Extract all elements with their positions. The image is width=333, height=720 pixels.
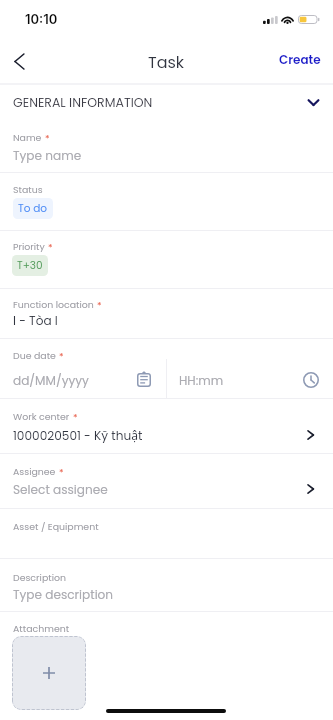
staticText: * (73, 411, 78, 424)
button[interactable]: Create (272, 46, 328, 73)
staticText: HH:mm (179, 372, 224, 389)
other: Pick time (303, 372, 319, 388)
button[interactable]: Back (2, 43, 33, 79)
staticText: Type name (13, 147, 82, 164)
button[interactable] (167, 359, 333, 398)
staticText: * (59, 350, 64, 363)
button[interactable] (0, 454, 333, 508)
button[interactable] (0, 399, 333, 453)
other: Pick date (137, 371, 151, 388)
staticText: Asset / Equipment (13, 520, 99, 533)
staticText: Function location (13, 298, 94, 311)
staticText: * (48, 241, 53, 254)
staticText: Task (148, 51, 185, 73)
button[interactable] (0, 289, 333, 338)
staticText: GENERAL INFORMATION (13, 94, 153, 111)
staticText: dd/MM/yyyy (13, 372, 89, 389)
staticText: Work center (13, 410, 70, 423)
staticText: 1000020501 - Kỹ thuật (13, 427, 143, 444)
staticText: Due date (13, 349, 56, 362)
staticText: * (97, 299, 102, 312)
staticText: * (59, 466, 64, 479)
staticText: Status (13, 183, 43, 196)
button[interactable] (0, 359, 166, 398)
button[interactable]: GENERAL INFORMATION (0, 86, 333, 119)
staticText: Priority (13, 240, 45, 253)
staticText: T+30 (17, 258, 43, 273)
staticText: 10:10 (25, 11, 58, 27)
staticText: * (45, 132, 50, 145)
staticText: Name (13, 131, 42, 144)
staticText: Attachment (13, 622, 70, 635)
staticText: I - Tòa I (13, 312, 58, 329)
button[interactable]: Add attachment (12, 636, 86, 710)
button[interactable] (0, 173, 333, 230)
staticText: Create (279, 51, 321, 68)
staticText: To do (18, 201, 48, 216)
staticText: Description (13, 571, 66, 584)
staticText: Assignee (13, 465, 56, 478)
button[interactable] (0, 119, 333, 172)
button[interactable] (0, 231, 333, 288)
button[interactable] (0, 559, 333, 611)
staticText: Select assignee (13, 481, 108, 498)
staticText: Type description (13, 586, 114, 603)
button[interactable] (0, 509, 333, 558)
